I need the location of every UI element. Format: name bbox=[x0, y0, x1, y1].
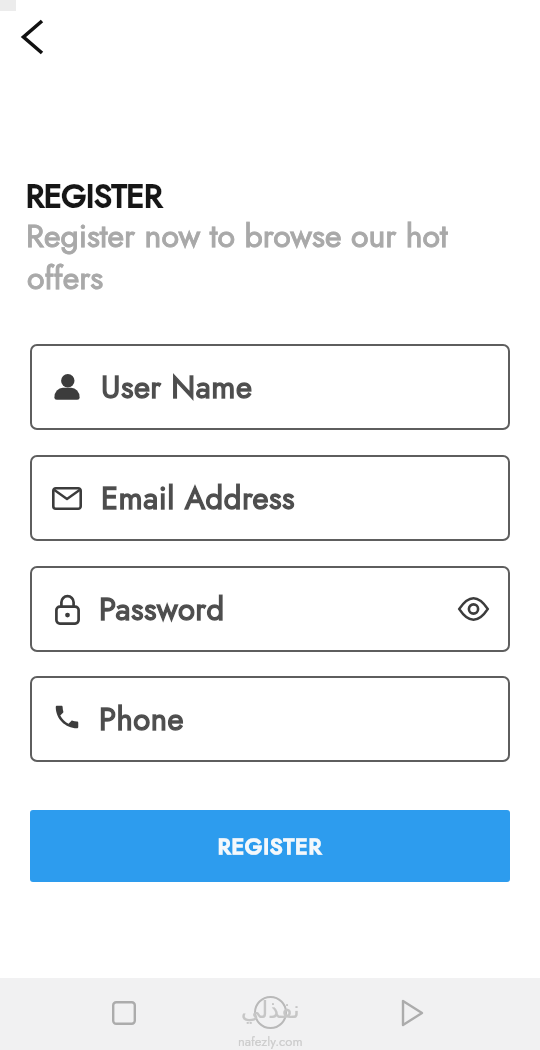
button[interactable]: Email Address bbox=[30, 455, 510, 541]
button[interactable]: REGISTER bbox=[30, 810, 510, 882]
staticText: REGISTER bbox=[218, 830, 323, 862]
staticText: Password bbox=[99, 587, 225, 632]
staticText: Phone bbox=[99, 697, 184, 742]
button[interactable]: Phone bbox=[30, 676, 510, 762]
button[interactable] bbox=[386, 987, 438, 1039]
button[interactable] bbox=[6, 11, 58, 63]
staticText: Register now to browse our hot bbox=[26, 213, 448, 259]
button[interactable] bbox=[244, 986, 296, 1038]
staticText: REGISTER bbox=[218, 830, 323, 862]
staticText: Email Address bbox=[101, 476, 296, 521]
staticText: nafezly.com bbox=[238, 1032, 303, 1050]
staticText: offers bbox=[27, 255, 104, 301]
staticText: Password bbox=[99, 587, 225, 632]
staticText: REGISTER bbox=[26, 173, 163, 219]
staticText: User Name bbox=[101, 365, 253, 410]
staticText: User Name bbox=[101, 365, 253, 410]
staticText: Phone bbox=[99, 697, 184, 742]
staticText: نفذلي bbox=[241, 996, 300, 1024]
staticText: Register now to browse our hot bbox=[26, 213, 448, 259]
button[interactable]: Password bbox=[30, 566, 510, 652]
staticText: REGISTER bbox=[26, 173, 163, 219]
button[interactable] bbox=[98, 987, 150, 1039]
staticText: Email Address bbox=[101, 476, 296, 521]
button[interactable]: User Name bbox=[30, 344, 510, 430]
staticText: offers bbox=[27, 255, 104, 301]
